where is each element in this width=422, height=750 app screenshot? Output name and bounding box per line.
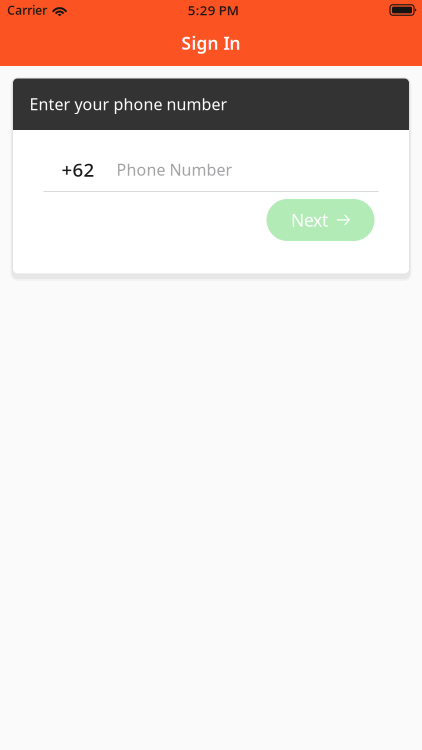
button[interactable]: Phone Number xyxy=(12,130,409,192)
staticText: Carrier xyxy=(7,2,47,18)
staticText: Phone Number xyxy=(116,159,232,180)
button[interactable]: Next xyxy=(266,199,374,241)
staticText: Enter your phone number xyxy=(29,93,227,115)
staticText: 5:29 PM xyxy=(187,1,238,19)
staticText: +62 xyxy=(61,157,94,182)
staticText: Next xyxy=(291,208,328,231)
staticText: Sign In xyxy=(181,31,240,54)
